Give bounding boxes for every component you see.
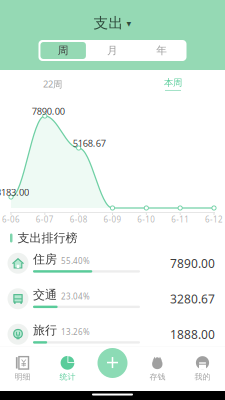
button[interactable]: 我的 xyxy=(180,352,225,385)
staticText: 6-06 xyxy=(2,214,20,225)
staticText: 明细 xyxy=(14,372,30,382)
button[interactable]: 交通 xyxy=(0,281,225,316)
staticText: 住房 xyxy=(33,252,57,267)
staticText: 交通 xyxy=(33,287,57,302)
staticText: 13.26% xyxy=(61,326,90,337)
staticText: 本周 xyxy=(164,77,182,88)
staticText: 周 xyxy=(58,44,69,57)
button[interactable]: 年 xyxy=(137,40,186,61)
staticText: 6-10 xyxy=(137,214,155,225)
staticText: 6-11 xyxy=(171,214,189,225)
staticText: 统计 xyxy=(59,372,75,382)
staticText: 5168.67 xyxy=(73,137,106,149)
staticText: 7890.00 xyxy=(32,105,65,117)
staticText: ▾ xyxy=(126,18,131,29)
staticText: 6-08 xyxy=(70,214,88,225)
staticText: 年 xyxy=(156,44,167,57)
staticText: 1888.00 xyxy=(170,326,215,342)
staticText: 23.04% xyxy=(61,291,90,302)
button[interactable]: 支出 xyxy=(81,12,143,34)
staticText: 6-07 xyxy=(36,214,54,225)
button[interactable]: 新增记账 xyxy=(92,343,132,383)
button[interactable]: 存钱 xyxy=(135,352,180,385)
button[interactable]: 住房 xyxy=(0,245,225,281)
button[interactable]: 本周 xyxy=(164,77,182,91)
staticText: 6-09 xyxy=(103,214,121,225)
staticText: 支出排行榜 xyxy=(17,231,77,245)
staticText: 7890.00 xyxy=(170,255,215,271)
button[interactable]: 统计 xyxy=(45,352,90,385)
button[interactable]: 月 xyxy=(88,40,137,61)
staticText: 3183.00 xyxy=(0,186,29,198)
staticText: 支出 xyxy=(93,14,123,32)
button[interactable]: 周 xyxy=(38,40,88,61)
staticText: 月 xyxy=(107,44,118,57)
staticText: 旅行 xyxy=(33,323,57,338)
staticText: 6-12 xyxy=(205,214,223,225)
staticText: 55.40% xyxy=(61,255,90,266)
staticText: 3280.67 xyxy=(170,291,215,307)
staticText: 存钱 xyxy=(149,372,165,382)
staticText: 22周 xyxy=(43,78,62,90)
button[interactable]: 明细 xyxy=(0,352,45,385)
button[interactable]: 旅行 xyxy=(0,316,225,352)
staticText: 我的 xyxy=(194,372,210,382)
